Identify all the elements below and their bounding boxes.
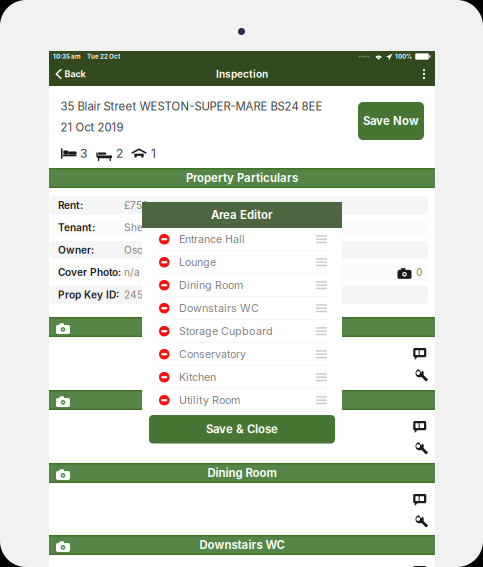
button[interactable]: Defects <box>414 369 425 381</box>
staticText: 100% <box>395 53 412 60</box>
button[interactable]: Comments <box>414 348 425 359</box>
button[interactable]: Defects <box>414 442 425 454</box>
button[interactable]: Add photo <box>52 536 74 555</box>
staticText: 1 <box>151 146 156 160</box>
staticText: Inspection <box>216 68 268 80</box>
staticText: 35 Blair Street WESTON-SUPER-MARE BS24 8… <box>60 99 322 113</box>
button[interactable]: Comments <box>414 421 425 432</box>
staticText: Back <box>64 68 85 79</box>
button[interactable]: Back <box>49 62 92 86</box>
button[interactable]: More options <box>413 62 435 86</box>
staticText: n/a <box>124 266 140 279</box>
staticText: Tenant: <box>58 221 95 234</box>
button[interactable]: Photos <box>398 266 422 279</box>
staticText: Dining Room <box>179 279 243 292</box>
button[interactable]: Comments <box>414 494 425 505</box>
button[interactable]: Add photo <box>52 318 74 337</box>
staticText: Area Editor <box>211 208 273 222</box>
staticText: Utility Room <box>179 394 240 407</box>
staticText: Rent: <box>58 199 83 211</box>
staticText: Oscar <box>124 244 153 256</box>
staticText: 0 <box>416 266 422 279</box>
staticText: Downstairs WC <box>199 538 284 552</box>
staticText: 21 Oct 2019 <box>60 120 123 134</box>
staticText: Dining Room <box>207 466 276 480</box>
staticText: Shelly <box>124 221 154 234</box>
staticText: Entrance Hall <box>179 233 245 246</box>
staticText: 245 <box>124 289 143 301</box>
staticText: 2 <box>116 146 123 160</box>
staticText: Cover Photo: <box>58 266 121 279</box>
staticText: Save & Close <box>206 422 278 436</box>
staticText: Tue 22 Oct <box>87 53 120 60</box>
staticText: Owner: <box>58 244 94 256</box>
staticText: Lounge <box>179 256 216 269</box>
button[interactable]: Save Now <box>358 102 424 140</box>
staticText: Storage Cupboard <box>179 325 273 338</box>
staticText: 10:35 am <box>53 53 81 60</box>
button[interactable]: Save & Close <box>149 415 335 443</box>
staticText: Prop Key ID: <box>58 289 119 301</box>
button[interactable]: Add photo <box>52 464 74 483</box>
staticText: Conservatory <box>179 348 246 361</box>
staticText: £750 <box>124 199 148 211</box>
button[interactable]: Defects <box>414 515 425 527</box>
button[interactable]: Add photo <box>52 391 74 410</box>
staticText: 3 <box>80 146 87 160</box>
staticText: Save Now <box>363 114 419 128</box>
staticText: Kitchen <box>179 371 216 384</box>
staticText: Property Particulars <box>186 171 298 185</box>
staticText: Downstairs WC <box>179 302 259 315</box>
